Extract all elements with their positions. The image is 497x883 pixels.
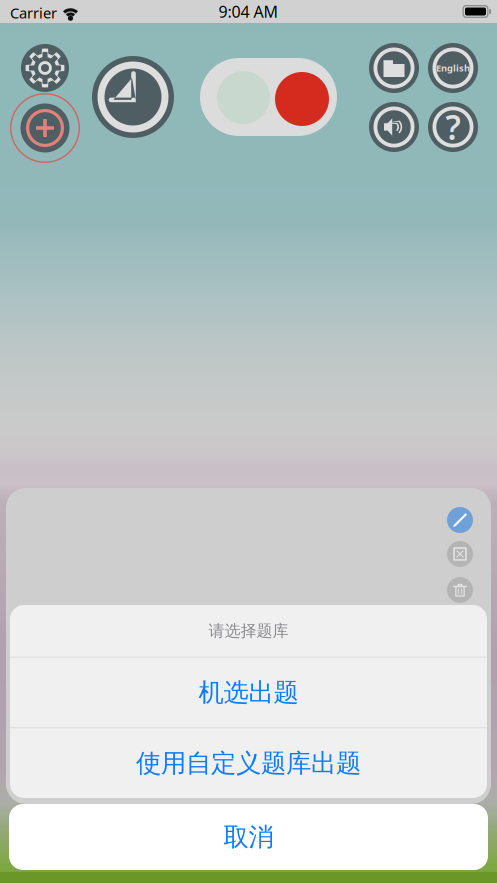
button[interactable]: Settings: [21, 44, 69, 92]
button[interactable]: 使用自定义题库出题: [10, 728, 487, 798]
button[interactable]: Help: [428, 102, 478, 152]
staticText: 取消: [223, 821, 273, 852]
button[interactable]: Recording toggle: [200, 58, 337, 136]
button[interactable]: Clear: [447, 541, 473, 567]
button[interactable]: Files: [369, 43, 419, 93]
button[interactable]: Timer: [92, 56, 174, 138]
staticText: ?: [445, 105, 460, 149]
button[interactable]: 取消: [9, 804, 488, 870]
button[interactable]: Sound: [369, 102, 419, 152]
staticText: 使用自定义题库出题: [136, 748, 361, 779]
button[interactable]: Add: [10, 93, 80, 163]
staticText: 9:04 AM: [218, 1, 278, 22]
button[interactable]: 机选出题: [10, 657, 487, 727]
staticText: 机选出题: [198, 677, 298, 708]
button[interactable]: Edit: [447, 507, 473, 533]
button[interactable]: Language: [428, 43, 478, 93]
staticText: Carrier: [10, 3, 57, 22]
staticText: English: [436, 62, 470, 74]
staticText: 请选择题库: [208, 621, 288, 641]
button[interactable]: Delete: [447, 577, 473, 603]
